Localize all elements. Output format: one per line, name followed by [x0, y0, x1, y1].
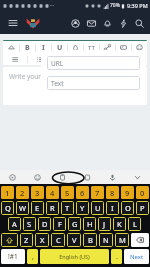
button[interactable]: Y: [76, 201, 89, 215]
button[interactable]: Notifications: [99, 15, 115, 31]
staticText: U: [95, 203, 101, 213]
button[interactable]: G: [68, 217, 81, 231]
button[interactable]: 9: [121, 186, 134, 199]
staticText: 5: [65, 188, 70, 198]
button[interactable]: R: [46, 201, 59, 215]
button[interactable]: Settings: [0, 170, 25, 184]
button[interactable]: 1: [1, 186, 14, 199]
button[interactable]: 4: [46, 186, 59, 199]
button[interactable]: Backspace: [131, 233, 149, 247]
button[interactable]: Text size: [84, 41, 99, 54]
staticText: 4: [50, 188, 55, 198]
button[interactable]: H: [83, 217, 96, 231]
staticText: 3: [35, 188, 40, 198]
button[interactable]: Bullet list: [28, 54, 52, 65]
button[interactable]: E: [31, 201, 44, 215]
staticText: N: [103, 235, 109, 245]
button[interactable]: Shift: [1, 233, 18, 247]
button[interactable]: U: [91, 201, 104, 215]
button[interactable]: 8: [106, 186, 119, 199]
button[interactable]: C: [51, 233, 65, 247]
button[interactable]: J: [98, 217, 111, 231]
button[interactable]: A: [8, 217, 21, 231]
button[interactable]: Alignment: [3, 54, 27, 65]
button[interactable]: Collapse: [125, 170, 150, 184]
button[interactable]: S: [23, 217, 36, 231]
button[interactable]: Q: [1, 201, 14, 215]
button[interactable]: Undo: [3, 41, 19, 54]
staticText: E: [35, 203, 40, 213]
button[interactable]: I: [106, 201, 119, 215]
button[interactable]: W: [16, 201, 29, 215]
staticText: 9: [125, 188, 130, 198]
button[interactable]: K: [113, 217, 126, 231]
button[interactable]: M: [115, 233, 129, 247]
button[interactable]: L: [128, 217, 141, 231]
staticText: English (US): [59, 253, 90, 260]
button[interactable]: Emoji: [132, 41, 147, 54]
button[interactable]: 2: [16, 186, 29, 199]
button[interactable]: N: [99, 233, 113, 247]
button[interactable]: Sticker: [75, 170, 100, 184]
staticText: W: [19, 203, 26, 213]
staticText: A: [12, 219, 17, 229]
staticText: !#1: [8, 252, 18, 261]
staticText: URL: [51, 59, 64, 68]
staticText: X: [40, 235, 45, 245]
staticText: 1: [5, 188, 10, 198]
button[interactable]: Numbered list: [53, 54, 77, 65]
button[interactable]: F: [53, 217, 66, 231]
button[interactable]: .: [111, 249, 122, 264]
staticText: ···: [50, 2, 55, 9]
button[interactable]: B: [83, 233, 97, 247]
button[interactable]: O: [121, 201, 134, 215]
staticText: V: [72, 235, 77, 245]
button[interactable]: Voice input: [100, 170, 125, 184]
button[interactable]: 6: [76, 186, 89, 199]
button[interactable]: T: [61, 201, 74, 215]
button[interactable]: Text: [47, 76, 140, 90]
staticText: Q: [5, 203, 11, 213]
button[interactable]: 0: [136, 186, 149, 199]
button[interactable]: Search: [131, 15, 147, 31]
button[interactable]: !#1: [1, 249, 25, 264]
button[interactable]: Clipboard: [50, 170, 75, 184]
button[interactable]: Italic: [36, 41, 51, 54]
staticText: 6: [80, 188, 85, 198]
staticText: R: [50, 203, 55, 213]
button[interactable]: Underline: [52, 41, 67, 54]
button[interactable]: Profile: [67, 15, 83, 31]
button[interactable]: Emoji: [25, 170, 50, 184]
button[interactable]: V: [67, 233, 81, 247]
staticText: B: [88, 235, 93, 245]
staticText: I: [111, 203, 114, 213]
button[interactable]: Mail: [83, 15, 99, 31]
button[interactable]: 5: [61, 186, 74, 199]
button[interactable]: Space: [40, 249, 109, 264]
staticText: C: [56, 235, 61, 245]
button[interactable]: 7: [91, 186, 104, 199]
button[interactable]: Text color: [68, 41, 83, 54]
staticText: D: [42, 219, 48, 229]
button[interactable]: Menu: [5, 15, 21, 31]
button[interactable]: P: [136, 201, 149, 215]
button[interactable]: ,: [27, 249, 38, 264]
button[interactable]: Bold: [20, 41, 35, 54]
button[interactable]: Insert link: [100, 41, 115, 54]
staticText: H: [87, 219, 93, 229]
staticText: G: [72, 219, 78, 229]
button[interactable]: 3: [31, 186, 44, 199]
staticText: U: [57, 43, 63, 53]
staticText: 8: [110, 188, 115, 198]
button[interactable]: URL: [47, 56, 140, 70]
button[interactable]: Write your message: [3, 67, 147, 105]
button[interactable]: Activity: [115, 15, 131, 31]
button[interactable]: Z: [20, 233, 33, 247]
button[interactable]: Insert image: [116, 41, 131, 54]
button[interactable]: App logo: [24, 14, 41, 31]
button[interactable]: Next: [124, 249, 149, 264]
staticText: B: [25, 43, 30, 53]
button[interactable]: X: [35, 233, 49, 247]
button[interactable]: D: [38, 217, 51, 231]
staticText: .: [116, 252, 118, 262]
